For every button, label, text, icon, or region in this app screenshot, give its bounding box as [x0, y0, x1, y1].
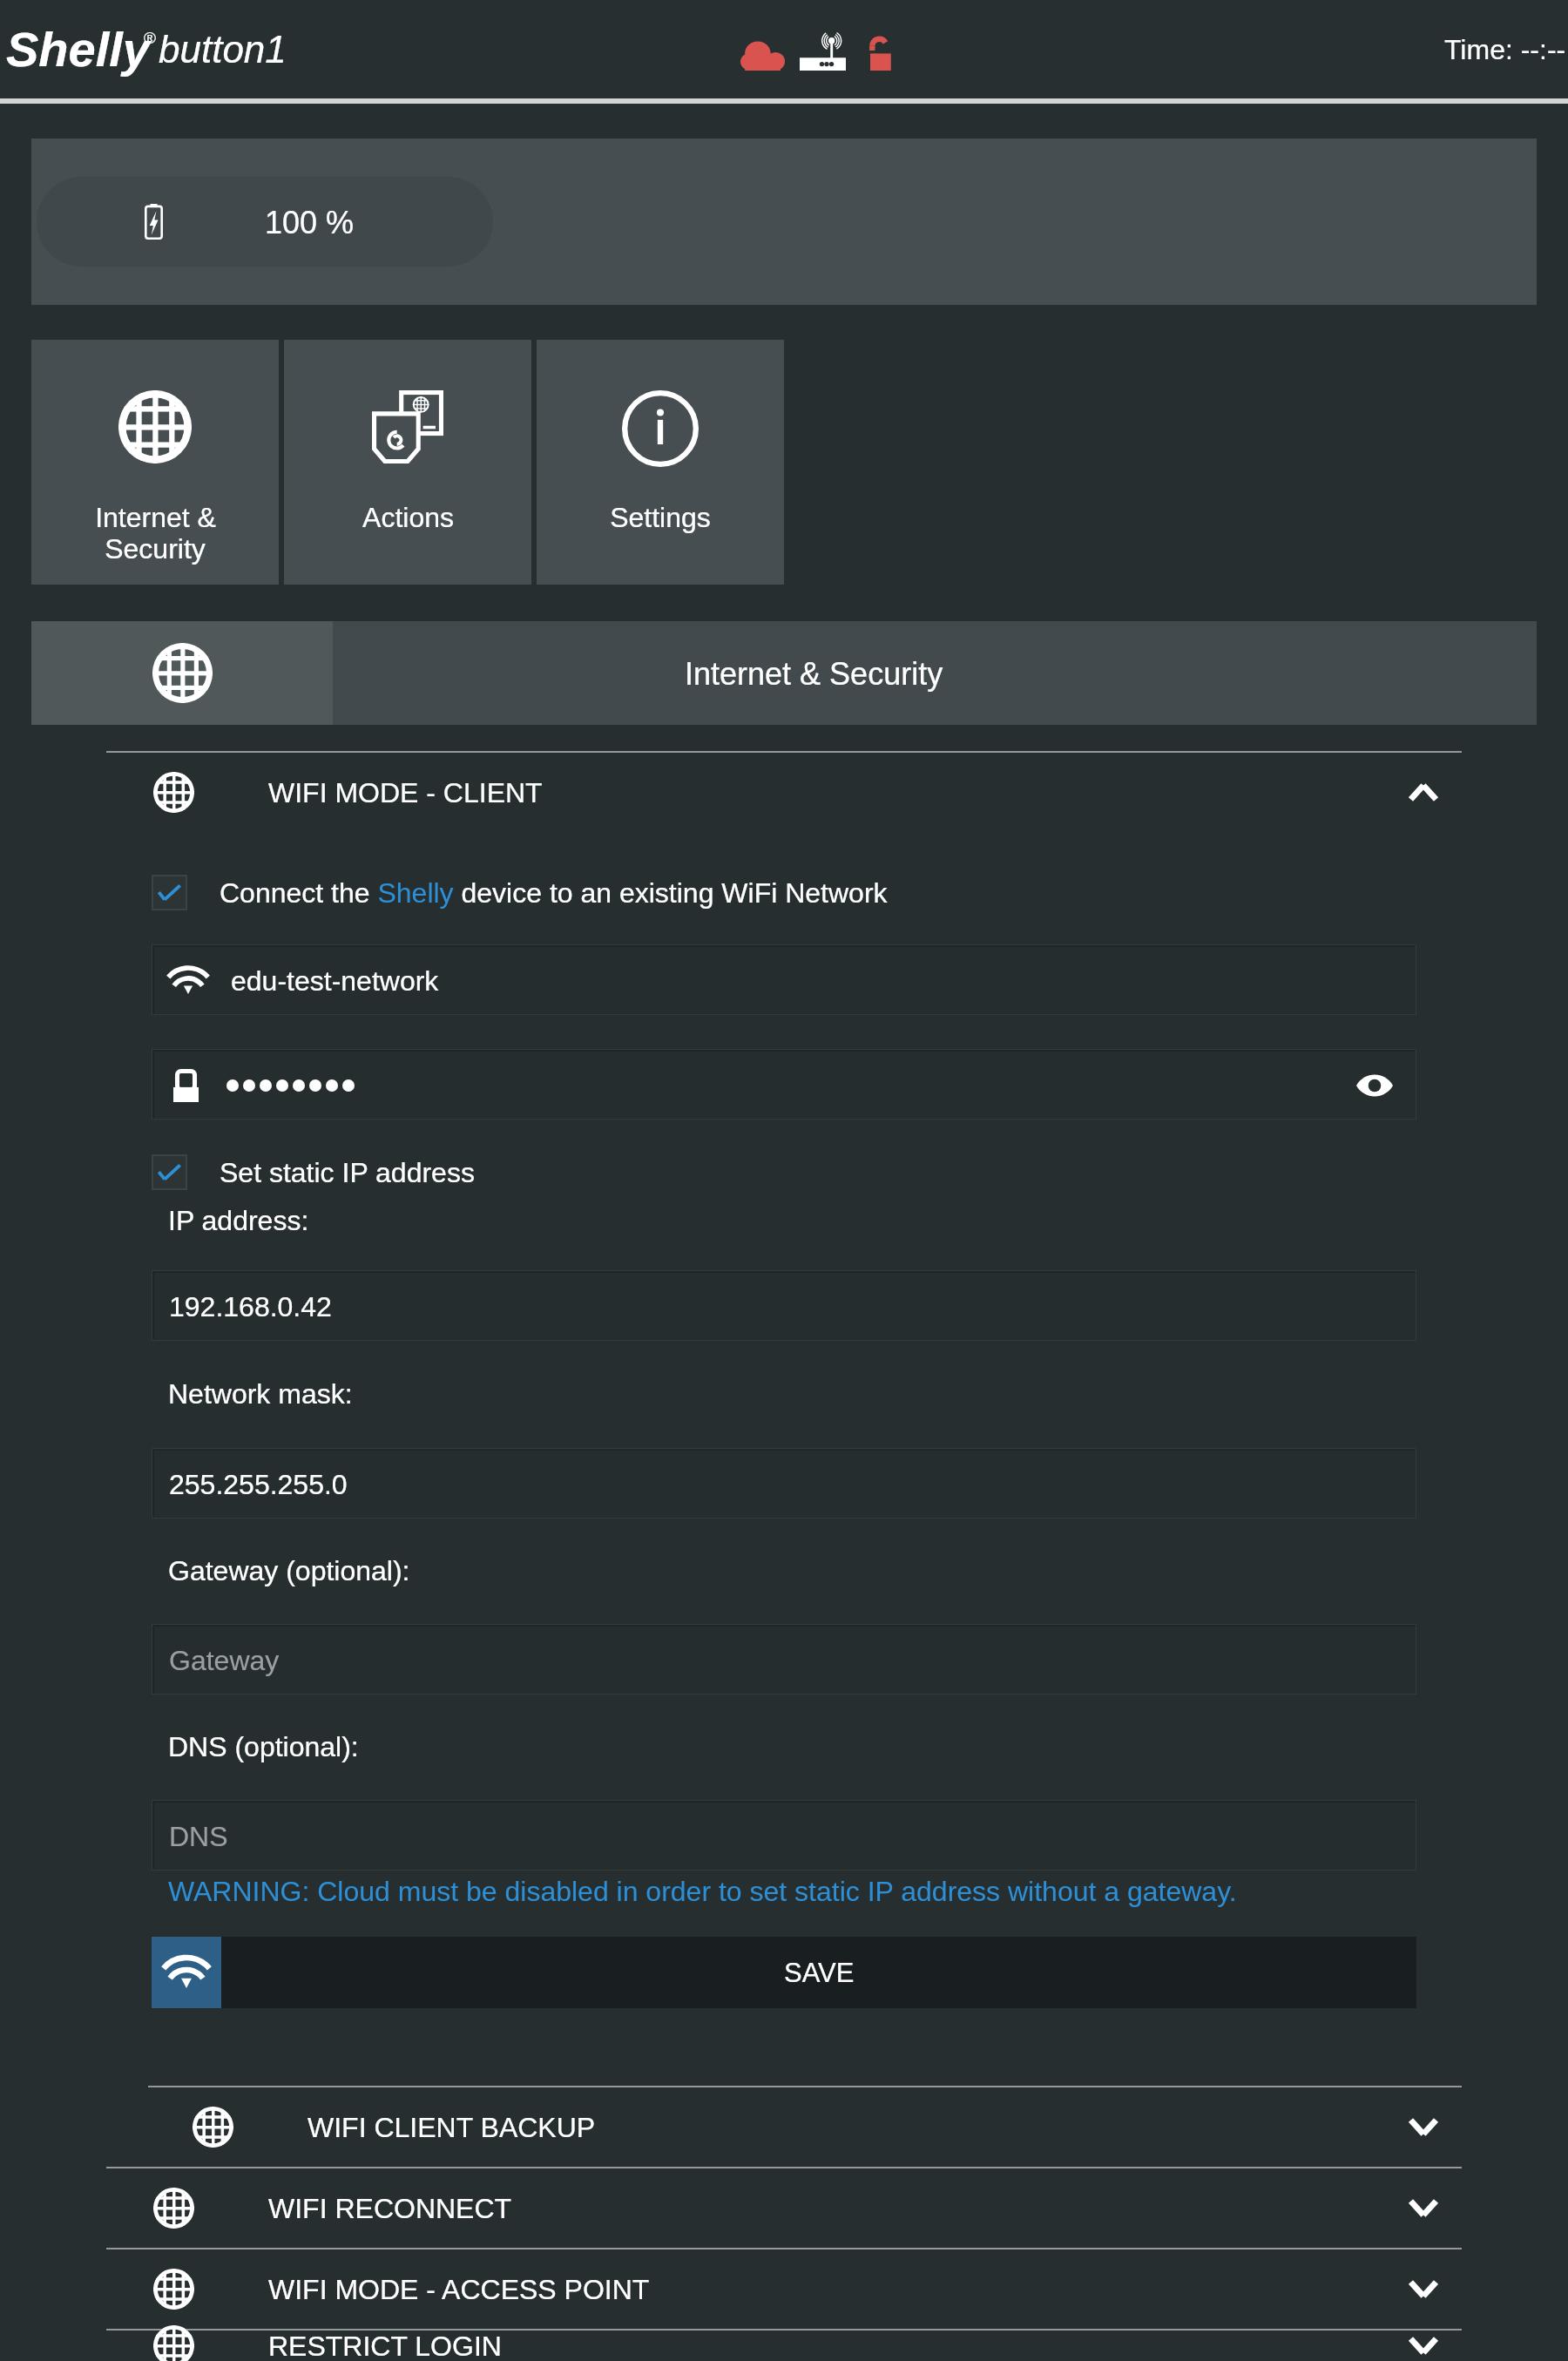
- staticText: DNS (optional):: [168, 1731, 359, 1762]
- staticText: DNS: [169, 1821, 228, 1852]
- button[interactable]: edu-test-network: [154, 947, 1416, 1014]
- staticText: WARNING: Cloud must be disabled in order…: [168, 1876, 1237, 1907]
- button[interactable]: Internet &: [31, 340, 279, 585]
- button[interactable]: Show password: [1346, 1064, 1403, 1107]
- button[interactable]: Settings: [537, 340, 784, 585]
- staticText: Time: --:--: [1444, 34, 1566, 65]
- staticText: Set static IP address: [220, 1157, 475, 1188]
- button[interactable]: WIFI RECONNECT: [0, 2168, 1568, 2248]
- staticText: Network mask:: [168, 1378, 353, 1410]
- button[interactable]: Actions: [284, 340, 531, 585]
- staticText: Shelly: [6, 22, 150, 77]
- staticText: Security: [105, 533, 206, 565]
- button[interactable]: WIFI MODE - CLIENT: [0, 753, 1568, 832]
- staticText: Gateway: [169, 1645, 280, 1676]
- staticText: Internet & Security: [685, 656, 943, 691]
- button[interactable]: 255.255.255.0: [154, 1451, 1416, 1518]
- staticText: WIFI RECONNECT: [268, 2193, 512, 2224]
- staticText: Connect the Shelly device to an existing…: [220, 877, 888, 909]
- staticText: edu-test-network: [231, 965, 439, 997]
- staticText: Gateway (optional):: [168, 1555, 410, 1586]
- staticText: 255.255.255.0: [169, 1469, 348, 1500]
- staticText: WIFI MODE - ACCESS POINT: [268, 2274, 650, 2305]
- staticText: Settings: [610, 502, 711, 533]
- button[interactable]: Gateway: [154, 1627, 1416, 1694]
- staticText: Internet &: [95, 502, 216, 533]
- staticText: Actions: [362, 502, 454, 533]
- button[interactable]: DNS: [154, 1803, 1416, 1870]
- button[interactable]: RESTRICT LOGIN: [0, 2331, 1568, 2361]
- staticText: ®: [144, 29, 156, 47]
- staticText: 192.168.0.42: [169, 1291, 332, 1323]
- staticText: IP address:: [168, 1205, 309, 1236]
- button[interactable]: Checkbox, checked: [152, 875, 187, 910]
- button[interactable]: SAVE: [152, 1937, 1416, 2008]
- button[interactable]: Show password: [154, 1052, 1416, 1119]
- button[interactable]: 192.168.0.42: [154, 1273, 1416, 1340]
- button[interactable]: Internet & Security: [31, 621, 1537, 725]
- button[interactable]: 100 %: [37, 177, 493, 267]
- staticText: WIFI MODE - CLIENT: [268, 777, 543, 808]
- staticText: button1: [159, 28, 287, 71]
- staticText: 100 %: [265, 205, 355, 240]
- staticText: WIFI CLIENT BACKUP: [308, 2112, 596, 2143]
- staticText: SAVE: [784, 1958, 855, 1988]
- button[interactable]: WIFI MODE - ACCESS POINT: [0, 2249, 1568, 2329]
- button[interactable]: Checkbox, checked: [152, 1154, 187, 1190]
- staticText: RESTRICT LOGIN: [268, 2331, 502, 2361]
- button[interactable]: WIFI CLIENT BACKUP: [0, 2087, 1568, 2167]
